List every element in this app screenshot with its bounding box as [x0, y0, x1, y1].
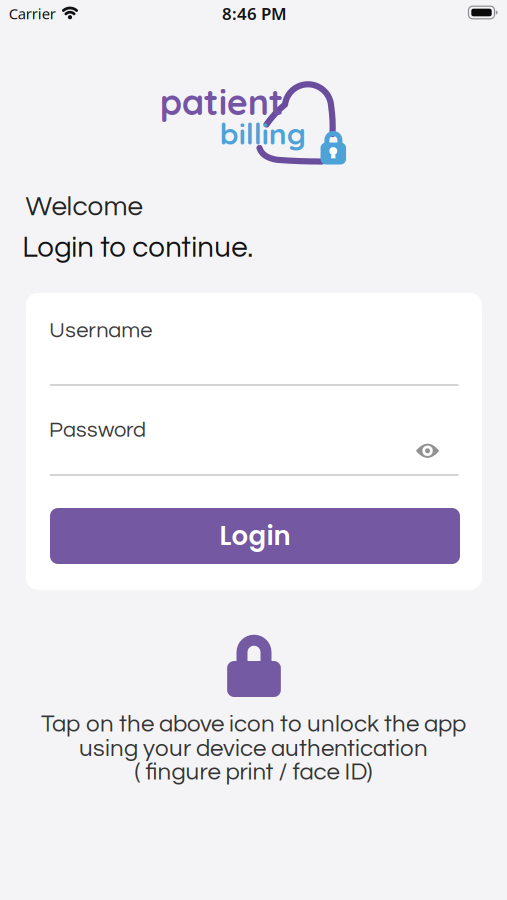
staticText: Username [49, 319, 152, 342]
button[interactable]: Login [50, 508, 460, 564]
staticText: patient [160, 79, 284, 124]
staticText: Carrier [9, 3, 56, 24]
button[interactable]: Show password [416, 443, 439, 459]
button[interactable]: Username [50, 310, 458, 385]
staticText: ( fingure print / face ID) [134, 760, 372, 785]
staticText: 8:46 PM [222, 2, 287, 25]
staticText: Login [219, 518, 290, 554]
staticText: Tap on the above icon to unlock the app [41, 712, 466, 737]
staticText: using your device authentication [79, 736, 428, 761]
staticText: Login to continue. [22, 233, 253, 263]
button[interactable]: Unlock with device authentication [227, 627, 281, 697]
staticText: Welcome [25, 192, 142, 221]
staticText: Password [49, 419, 146, 441]
staticText: billing [220, 114, 306, 152]
button[interactable]: Password [50, 409, 458, 475]
